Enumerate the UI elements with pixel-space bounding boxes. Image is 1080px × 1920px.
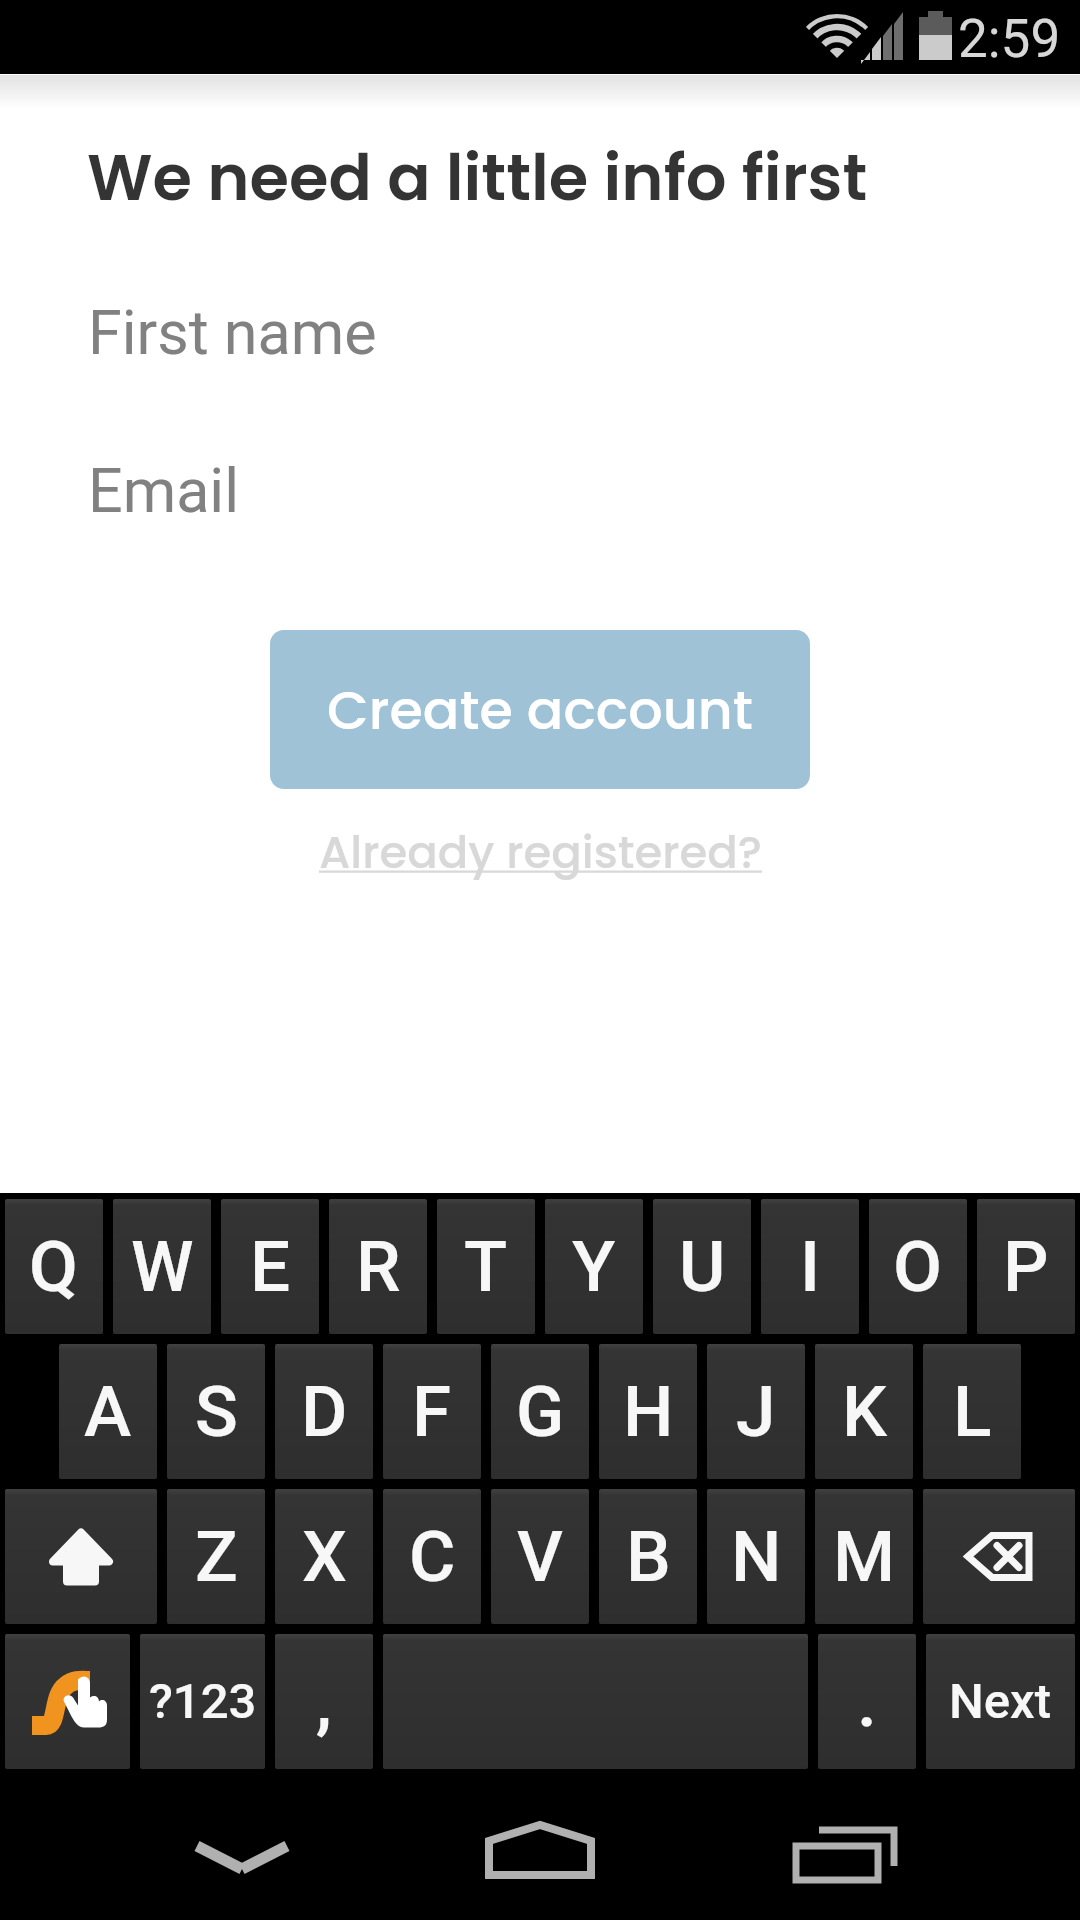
staticText: T <box>464 1225 508 1308</box>
button[interactable]: Home <box>450 1807 630 1897</box>
staticText: C <box>409 1515 456 1598</box>
staticText: X <box>302 1515 347 1598</box>
staticText: D <box>301 1370 348 1453</box>
button[interactable]: E <box>221 1199 319 1334</box>
staticText: S <box>195 1370 238 1453</box>
staticText: W <box>131 1225 194 1308</box>
button[interactable]: A <box>59 1344 157 1479</box>
button[interactable]: Period <box>818 1634 916 1769</box>
staticText: R <box>356 1225 401 1308</box>
staticText: P <box>1003 1225 1049 1308</box>
button[interactable]: M <box>815 1489 913 1624</box>
button[interactable]: First name <box>88 284 992 380</box>
staticText: M <box>833 1515 896 1598</box>
button[interactable]: L <box>923 1344 1021 1479</box>
button[interactable]: S <box>167 1344 265 1479</box>
staticText: . <box>857 1660 877 1743</box>
staticText: Create account <box>327 672 753 748</box>
button[interactable]: Backspace <box>923 1489 1075 1624</box>
button[interactable]: U <box>653 1199 751 1334</box>
button[interactable]: D <box>275 1344 373 1479</box>
button[interactable]: T <box>437 1199 535 1334</box>
staticText: N <box>731 1515 782 1598</box>
button[interactable]: Q <box>5 1199 103 1334</box>
staticText: I <box>800 1225 821 1308</box>
staticText: ?123 <box>149 1673 257 1730</box>
button[interactable]: Shift <box>5 1489 157 1624</box>
staticText: K <box>842 1370 887 1453</box>
button[interactable]: Swipe input <box>5 1634 130 1769</box>
staticText: , <box>316 1660 332 1743</box>
staticText: We need a little info first <box>87 133 868 223</box>
button[interactable]: Comma <box>275 1634 373 1769</box>
button[interactable]: B <box>599 1489 697 1624</box>
button[interactable]: P <box>977 1199 1075 1334</box>
button[interactable]: Email <box>88 442 992 538</box>
staticText: 2:59 <box>958 8 1061 70</box>
staticText: O <box>893 1225 943 1308</box>
staticText: First name <box>88 297 377 368</box>
staticText: Y <box>572 1225 616 1308</box>
button[interactable]: Already registered? <box>290 816 790 888</box>
staticText: J <box>736 1370 776 1453</box>
staticText: F <box>412 1370 452 1453</box>
button[interactable]: N <box>707 1489 805 1624</box>
staticText: Z <box>195 1515 238 1598</box>
button[interactable]: K <box>815 1344 913 1479</box>
staticText: B <box>626 1515 671 1598</box>
button[interactable]: Symbols <box>140 1634 265 1769</box>
button[interactable]: X <box>275 1489 373 1624</box>
staticText: Next <box>949 1673 1052 1730</box>
staticText: G <box>516 1370 565 1453</box>
button[interactable]: Recent apps <box>757 1811 937 1901</box>
button[interactable]: R <box>329 1199 427 1334</box>
button[interactable]: H <box>599 1344 697 1479</box>
staticText: Email <box>88 455 240 526</box>
button[interactable]: Y <box>545 1199 643 1334</box>
button[interactable]: Next <box>926 1634 1075 1769</box>
button[interactable]: O <box>869 1199 967 1334</box>
staticText: Already registered? <box>319 821 762 884</box>
staticText: V <box>517 1515 563 1598</box>
button[interactable]: F <box>383 1344 481 1479</box>
button[interactable]: J <box>707 1344 805 1479</box>
staticText: L <box>953 1370 992 1453</box>
button[interactable]: Z <box>167 1489 265 1624</box>
button[interactable]: Hide keyboard <box>152 1811 332 1901</box>
button[interactable]: I <box>761 1199 859 1334</box>
button[interactable]: W <box>113 1199 211 1334</box>
staticText: H <box>623 1370 674 1453</box>
button[interactable]: G <box>491 1344 589 1479</box>
staticText: Q <box>29 1225 79 1308</box>
button[interactable]: V <box>491 1489 589 1624</box>
staticText: A <box>84 1370 132 1453</box>
staticText: U <box>679 1225 726 1308</box>
staticText: E <box>250 1225 291 1308</box>
button[interactable]: Create account <box>270 630 810 789</box>
button[interactable]: C <box>383 1489 481 1624</box>
